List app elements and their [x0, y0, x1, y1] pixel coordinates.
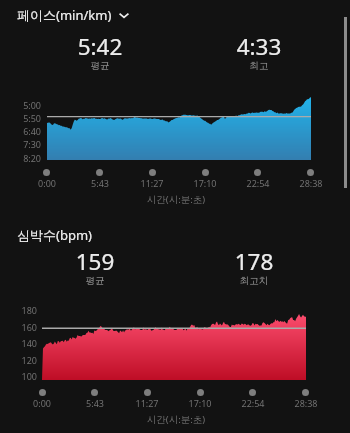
staticText: 28:38	[221, 177, 350, 189]
staticText: 심박수(bpm)	[17, 226, 92, 244]
staticText: 5:00	[0, 99, 41, 111]
staticText: 평균	[10, 60, 190, 72]
staticText: 5:43	[5, 397, 185, 409]
staticText: 0:00	[0, 397, 132, 409]
staticText: 7:30	[0, 138, 41, 150]
staticText: 0:00	[0, 177, 137, 189]
staticText: 6:40	[0, 125, 41, 137]
staticText: 160	[0, 321, 37, 333]
staticText: 11:27	[57, 397, 237, 409]
staticText: 100	[0, 370, 37, 382]
staticText: 178	[164, 246, 344, 277]
staticText: 22:54	[163, 397, 343, 409]
staticText: 11:27	[62, 177, 242, 189]
staticText: 5:43	[10, 177, 190, 189]
staticText: 17:10	[110, 397, 290, 409]
button[interactable]: 페이스(min/km)	[17, 6, 130, 24]
staticText: 22:54	[168, 177, 348, 189]
staticText: 5:42	[10, 31, 190, 62]
staticText: 28:38	[216, 397, 350, 409]
staticText: 5:50	[0, 112, 41, 124]
staticText: 최고치	[164, 275, 344, 287]
staticText: 140	[0, 337, 37, 349]
staticText: 8:20	[0, 152, 41, 164]
staticText: 120	[0, 354, 37, 366]
staticText: 4:33	[169, 31, 349, 62]
button[interactable]: 심박수(bpm)	[17, 226, 92, 244]
staticText: 시간(시:분:초)	[86, 193, 266, 206]
other: Change metric	[118, 9, 130, 21]
staticText: 17:10	[115, 177, 295, 189]
staticText: 159	[5, 246, 185, 277]
staticText: 180	[0, 304, 37, 316]
staticText: 최고	[169, 60, 349, 72]
staticText: 페이스(min/km)	[17, 6, 112, 24]
staticText: 평균	[5, 275, 185, 287]
staticText: 시간(시:분:초)	[86, 413, 266, 426]
